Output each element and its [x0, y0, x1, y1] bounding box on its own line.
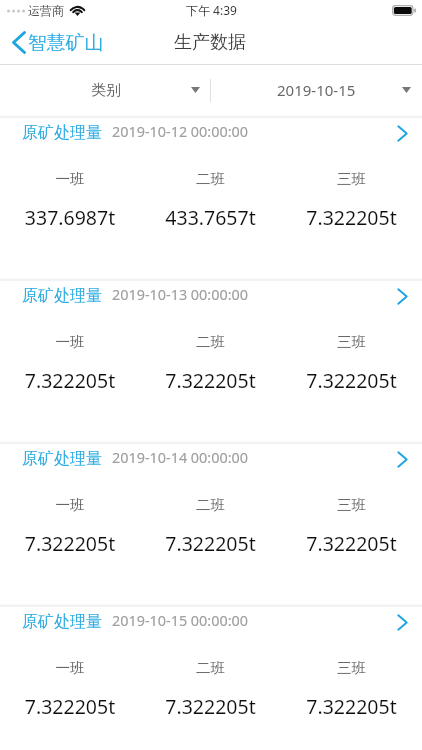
- staticText: 运营商: [28, 3, 64, 18]
- staticText: 7.322205t: [140, 367, 281, 394]
- staticText: 下午 4:39: [186, 2, 237, 18]
- staticText: 7.322205t: [281, 367, 422, 394]
- staticText: 7.322205t: [281, 530, 422, 557]
- staticText: 原矿处理量: [22, 612, 102, 632]
- staticText: 一班: [0, 333, 140, 351]
- button[interactable]: 返回 智慧矿山: [0, 20, 118, 65]
- staticText: 一班: [0, 659, 140, 677]
- button[interactable]: 查看详情: [390, 118, 414, 148]
- staticText: 三班: [281, 333, 422, 351]
- staticText: 337.6987t: [0, 204, 140, 231]
- staticText: 生产数据: [174, 31, 246, 54]
- staticText: 一班: [0, 496, 140, 514]
- staticText: 原矿处理量: [22, 123, 102, 143]
- staticText: 2019-10-15: [277, 80, 356, 100]
- button[interactable]: 类别: [0, 65, 211, 115]
- staticText: 7.322205t: [140, 530, 281, 557]
- button[interactable]: 查看详情: [390, 444, 414, 474]
- staticText: 2019-10-12 00:00:00: [112, 122, 248, 142]
- staticText: 二班: [140, 333, 281, 351]
- staticText: 一班: [0, 170, 140, 188]
- staticText: 2019-10-15 00:00:00: [112, 611, 248, 631]
- staticText: 智慧矿山: [28, 31, 104, 55]
- staticText: 7.322205t: [0, 693, 140, 720]
- staticText: 7.322205t: [281, 693, 422, 720]
- button[interactable]: 2019-10-15: [211, 65, 422, 115]
- staticText: 三班: [281, 170, 422, 188]
- button[interactable]: 查看详情: [390, 281, 414, 311]
- button[interactable]: 原矿处理量: [0, 607, 422, 750]
- button[interactable]: 原矿处理量: [0, 281, 422, 441]
- staticText: 2019-10-13 00:00:00: [112, 285, 248, 305]
- staticText: 类别: [91, 81, 121, 100]
- staticText: 原矿处理量: [22, 286, 102, 306]
- staticText: 三班: [281, 496, 422, 514]
- staticText: 二班: [140, 659, 281, 677]
- staticText: 7.322205t: [281, 204, 422, 231]
- button[interactable]: 原矿处理量: [0, 444, 422, 604]
- staticText: 7.322205t: [0, 530, 140, 557]
- staticText: 2019-10-14 00:00:00: [112, 448, 248, 468]
- staticText: 二班: [140, 496, 281, 514]
- staticText: 三班: [281, 659, 422, 677]
- button[interactable]: 原矿处理量: [0, 118, 422, 278]
- button[interactable]: 查看详情: [390, 607, 414, 637]
- staticText: 原矿处理量: [22, 449, 102, 469]
- staticText: 7.322205t: [0, 367, 140, 394]
- staticText: 7.322205t: [140, 693, 281, 720]
- staticText: 二班: [140, 170, 281, 188]
- staticText: 433.7657t: [140, 204, 281, 231]
